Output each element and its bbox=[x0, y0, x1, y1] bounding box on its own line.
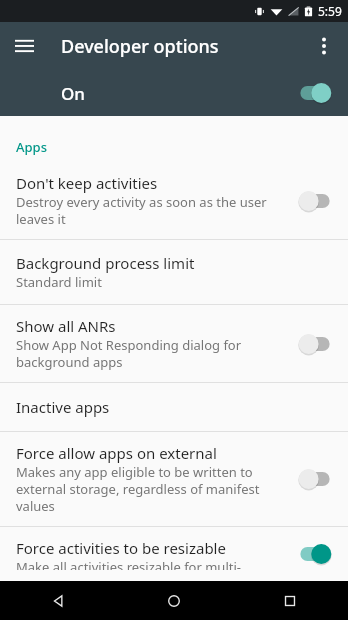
button[interactable]: Force allow apps on external bbox=[0, 432, 348, 526]
staticText: Make all activities resizable for multi-… bbox=[16, 558, 288, 570]
button[interactable]: Back bbox=[0, 581, 116, 620]
button[interactable]: Home bbox=[116, 581, 232, 620]
staticText: Don't keep activities bbox=[16, 173, 158, 193]
staticText: Force activities to be resizable bbox=[16, 538, 226, 558]
button[interactable]: Recent apps bbox=[232, 581, 348, 620]
button[interactable]: More options bbox=[300, 22, 348, 70]
button[interactable]: Open navigation menu bbox=[0, 22, 48, 70]
button[interactable]: On bbox=[0, 70, 348, 116]
button[interactable]: Force activities to be resizable bbox=[0, 527, 348, 581]
staticText: Show all ANRs bbox=[16, 316, 116, 336]
staticText: On bbox=[61, 82, 298, 105]
staticText: Background process limit bbox=[16, 253, 195, 273]
button[interactable]: Inactive apps bbox=[0, 383, 348, 431]
staticText: Force allow apps on external bbox=[16, 443, 217, 463]
button[interactable]: Background process limit bbox=[0, 240, 348, 304]
staticText: Inactive apps bbox=[16, 397, 110, 417]
staticText: Standard limit bbox=[16, 273, 102, 291]
staticText: Destroy every activity as soon as the us… bbox=[16, 193, 288, 228]
button[interactable]: Show all ANRs bbox=[0, 305, 348, 382]
staticText: Show App Not Responding dialog for backg… bbox=[16, 336, 288, 371]
button[interactable]: Don't keep activities bbox=[0, 162, 348, 239]
staticText: 5:59 bbox=[318, 3, 342, 19]
staticText: Makes any app eligible to be written to … bbox=[16, 463, 288, 515]
staticText: Developer options bbox=[61, 34, 219, 59]
staticText: Apps bbox=[16, 138, 47, 156]
